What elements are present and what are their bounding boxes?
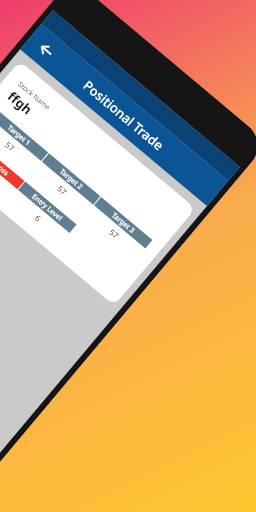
- staticText: 57: [107, 226, 122, 241]
- staticText: Stock Name: [15, 80, 53, 113]
- button[interactable]: Back: [31, 35, 62, 66]
- staticText: Entry Level: [30, 192, 64, 223]
- staticText: 57: [3, 139, 18, 154]
- staticText: Target 1: [5, 123, 33, 149]
- staticText: Target 2: [57, 167, 85, 192]
- staticText: Positional Trade: [80, 76, 168, 154]
- staticText: Stop Loss: [0, 150, 11, 178]
- staticText: 57: [55, 183, 70, 197]
- staticText: Target 3: [109, 210, 137, 236]
- staticText: 6: [33, 212, 44, 224]
- staticText: ffgh: [4, 87, 36, 118]
